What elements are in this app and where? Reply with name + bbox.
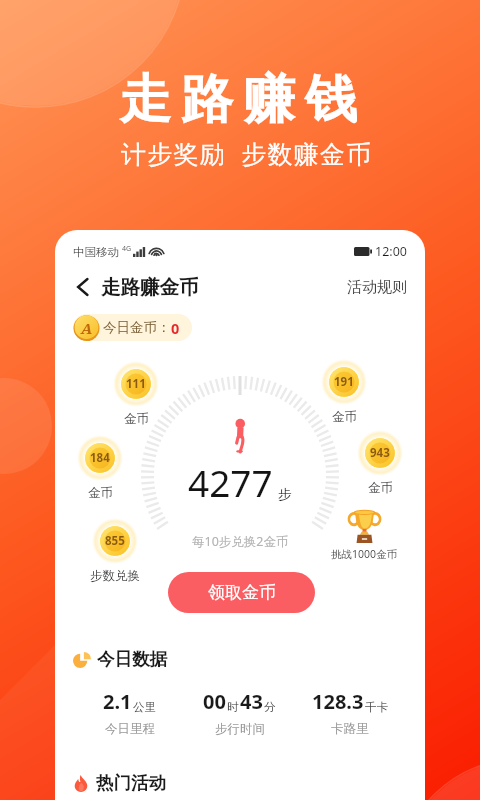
staticText: 今日数据 (97, 648, 167, 670)
staticText: 943 (370, 445, 390, 461)
staticText: 4G (122, 244, 132, 254)
staticText: 步数兑换 (90, 568, 140, 584)
staticText: 活动规则 (347, 278, 407, 297)
button[interactable]: 855 (90, 516, 140, 584)
staticText: 金币 (88, 485, 113, 501)
staticText: 步行时间 (215, 721, 265, 737)
button[interactable]: 184 (75, 433, 125, 501)
staticText: 191 (334, 374, 354, 390)
staticText: 00 (203, 688, 226, 715)
staticText: 领取金币 (208, 582, 276, 603)
staticText: 金币 (368, 480, 393, 496)
staticText: 128.3 (312, 688, 364, 715)
staticText: 走路赚金币 (101, 275, 199, 300)
staticText: 0 (171, 318, 180, 338)
staticText: 4277 (188, 457, 273, 507)
button[interactable]: 943 (355, 428, 405, 496)
staticText: 计步奖励 步数赚金币 (121, 136, 373, 170)
staticText: 12:00 (375, 243, 407, 260)
staticText: 走路赚钱 (114, 67, 362, 133)
staticText: 分 (264, 700, 276, 714)
button[interactable]: 111 (111, 359, 161, 427)
staticText: 金币 (124, 411, 149, 427)
staticText: 挑战1000金币 (331, 547, 398, 561)
staticText: 步 (278, 486, 292, 503)
staticText: 中国移动 (73, 245, 119, 259)
staticText: 热门活动 (96, 772, 166, 794)
staticText: A (81, 318, 93, 338)
staticText: 时 (227, 700, 239, 714)
staticText: 金币 (332, 409, 357, 425)
staticText: 2.1 (103, 688, 132, 715)
staticText: 公里 (133, 700, 156, 714)
staticText: 43 (240, 688, 263, 715)
button[interactable]: 领取金币 (168, 572, 315, 613)
staticText: 千卡 (365, 700, 388, 714)
button[interactable]: 挑战1000金币 (316, 505, 412, 561)
button[interactable]: Back (69, 274, 95, 300)
staticText: 每10步兑换2金币 (192, 533, 289, 550)
staticText: 今日里程 (105, 721, 155, 737)
button[interactable]: A (73, 314, 192, 341)
staticText: 今日金币： (103, 319, 171, 336)
button[interactable]: 191 (319, 357, 369, 425)
button[interactable]: 活动规则 (343, 274, 411, 301)
staticText: 111 (126, 376, 146, 392)
staticText: 855 (105, 533, 125, 549)
staticText: 184 (90, 450, 110, 466)
staticText: 卡路里 (331, 721, 369, 737)
